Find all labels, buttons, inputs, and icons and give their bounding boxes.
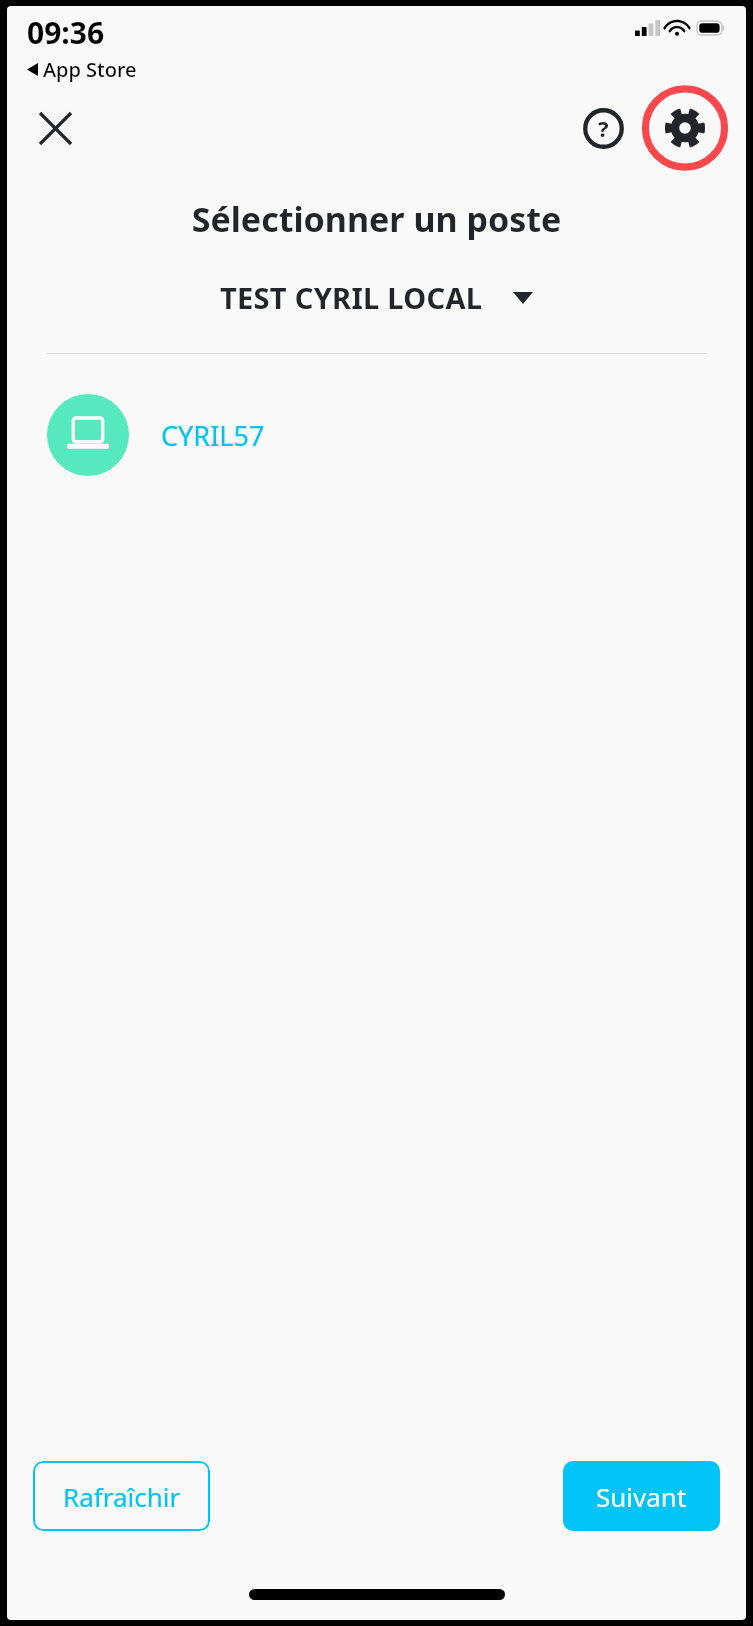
staticText: Rafraîchir [63,1479,181,1514]
staticText: Sélectionner un poste [7,196,746,242]
staticText: App Store [43,56,137,83]
button[interactable]: Aide [578,103,628,153]
button[interactable]: CYRIL57 [47,394,706,476]
button[interactable]: TEST CYRIL LOCAL [7,278,746,317]
staticText: 09:36 [27,12,105,53]
staticText: TEST CYRIL LOCAL [220,278,483,317]
staticText: CYRIL57 [161,417,265,454]
button[interactable]: Paramètres [642,86,728,170]
button[interactable]: Fermer [29,102,81,154]
staticText: Suivant [596,1479,687,1514]
button[interactable]: Suivant [563,1461,720,1531]
staticText: ? [598,113,609,143]
button[interactable]: Rafraîchir [33,1461,210,1531]
